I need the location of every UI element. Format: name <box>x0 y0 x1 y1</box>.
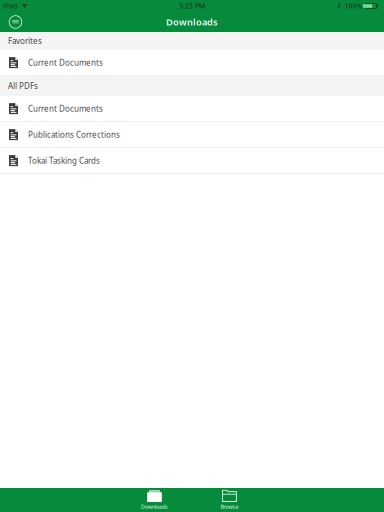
button[interactable]: Browse <box>192 488 267 512</box>
staticText: Browse <box>220 503 238 510</box>
staticText: 100% <box>344 2 362 10</box>
button[interactable]: Tokai Tasking Cards <box>0 148 384 174</box>
button[interactable]: Current Documents <box>0 96 384 122</box>
staticText: All PDFs <box>8 81 38 91</box>
staticText: Downloads <box>141 503 168 510</box>
staticText: Favorites <box>8 36 42 46</box>
staticText: Tokai Tasking Cards <box>28 155 100 166</box>
staticText: Current Documents <box>28 103 103 114</box>
staticText: Publications Corrections <box>28 129 120 140</box>
staticText: 3:25 PM <box>179 2 205 10</box>
button[interactable]: Menu <box>5 12 25 31</box>
button[interactable]: Current Documents <box>0 50 384 76</box>
staticText: Downloads <box>166 16 218 28</box>
button[interactable]: Downloads <box>117 488 192 512</box>
button[interactable]: Publications Corrections <box>0 122 384 148</box>
staticText: Current Documents <box>28 57 103 68</box>
staticText: iPad <box>3 2 17 10</box>
